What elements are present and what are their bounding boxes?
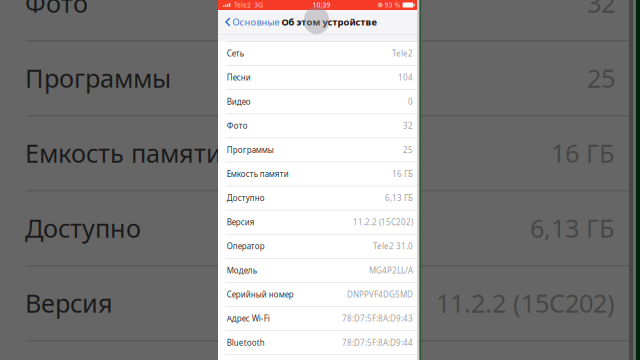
button[interactable]: Фото: [227, 114, 413, 137]
staticText: 78:D7:5F:8A:D9:44: [342, 337, 413, 348]
staticText: DNPPVF4DG5MD: [347, 289, 413, 300]
staticText: Модель: [227, 265, 257, 276]
button[interactable]: Адрес Wi-Fi: [227, 307, 413, 330]
staticText: Адрес Wi-Fi: [227, 313, 270, 324]
staticText: 6,13 ГБ: [530, 211, 615, 245]
staticText: 93 %: [384, 1, 400, 9]
staticText: 3G: [254, 1, 263, 9]
staticText: 32: [403, 120, 413, 131]
staticText: Основные: [232, 16, 279, 28]
button[interactable]: Видео: [227, 90, 413, 113]
staticText: Tele2: [234, 1, 251, 9]
staticText: Серийный номер: [227, 289, 294, 300]
staticText: 32: [587, 0, 615, 20]
staticText: 16 ГБ: [551, 136, 615, 170]
button[interactable]: Песни: [227, 66, 413, 89]
staticText: Доступно: [227, 193, 265, 203]
staticText: Об этом устройстве: [282, 16, 377, 28]
staticText: Tele2: [392, 48, 413, 59]
button[interactable]: Доступно: [227, 186, 413, 210]
staticText: 78:D7:5F:8A:D9:43: [342, 313, 413, 324]
staticText: 16 ГБ: [392, 169, 413, 179]
staticText: 11.2.2 (15C202): [436, 286, 615, 320]
staticText: Оператор: [227, 241, 265, 251]
staticText: Программы: [25, 61, 171, 95]
staticText: Версия: [25, 286, 113, 320]
staticText: MG4P2LL/A: [369, 265, 413, 276]
staticText: Программы: [227, 144, 274, 155]
staticText: Доступно: [25, 211, 141, 245]
staticText: 6,13 ГБ: [385, 193, 413, 203]
button[interactable]: Емкость памяти: [227, 162, 413, 186]
button[interactable]: Назад к Основные: [225, 10, 279, 34]
button[interactable]: Оператор: [227, 234, 413, 258]
staticText: 104: [398, 72, 413, 83]
staticText: Фото: [227, 120, 248, 131]
staticText: 25: [403, 144, 413, 155]
staticText: 0: [408, 96, 413, 107]
staticText: Фото: [25, 0, 88, 20]
staticText: Емкость памяти: [227, 169, 289, 179]
staticText: Версия: [227, 217, 255, 227]
staticText: Tele2 31.0: [373, 241, 413, 251]
staticText: Емкость памяти: [25, 136, 222, 170]
staticText: Песни: [227, 72, 251, 83]
button[interactable]: Сеть: [227, 42, 413, 65]
staticText: 25: [587, 61, 615, 95]
button[interactable]: Модель: [227, 259, 413, 282]
staticText: Сеть: [227, 48, 244, 59]
button[interactable]: Серийный номер: [227, 283, 413, 306]
staticText: 10:39: [312, 1, 330, 9]
staticText: 11.2.2 (15C202): [353, 217, 413, 227]
button[interactable]: Bluetooth: [227, 331, 413, 354]
staticText: Видео: [227, 96, 251, 107]
button[interactable]: Версия: [227, 210, 413, 234]
staticText: Bluetooth: [227, 337, 265, 348]
button[interactable]: Программы: [227, 138, 413, 161]
